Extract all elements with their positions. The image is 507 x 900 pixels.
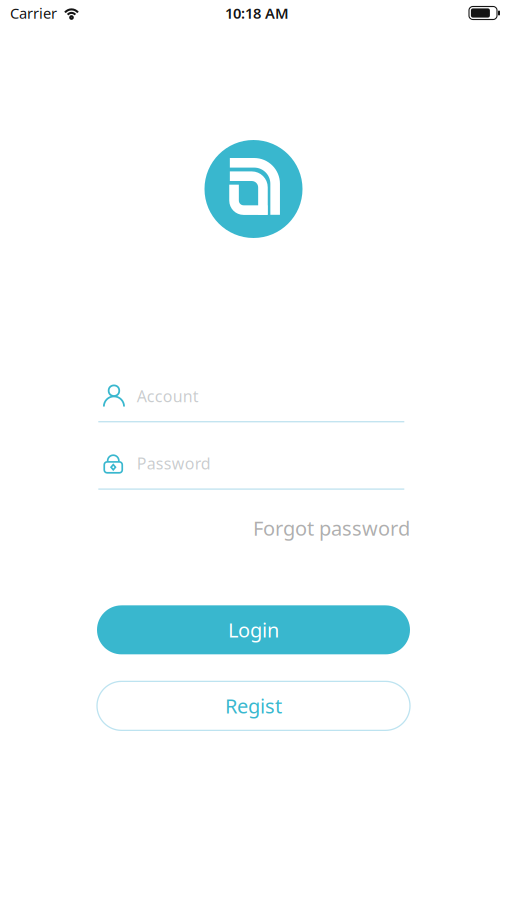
staticText: Forgot password [253,515,410,541]
button[interactable]: Login [97,605,410,654]
staticText: Regist [225,693,282,719]
staticText: Login [228,617,279,643]
staticText: 10:18 AM [225,3,289,23]
staticText: Password [137,453,211,474]
button[interactable]: Regist [97,681,410,730]
staticText: Account [137,385,199,407]
button[interactable]: Forgot password [253,509,410,547]
staticText: Carrier [10,3,57,23]
